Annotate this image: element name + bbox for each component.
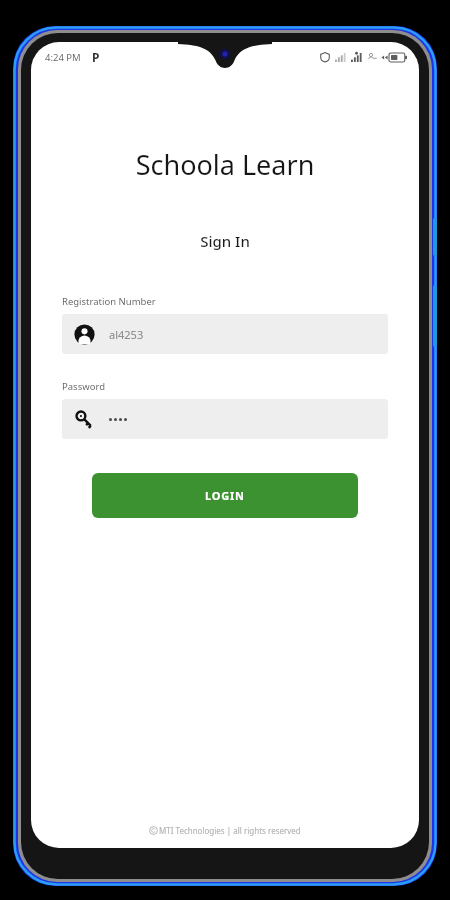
other: Password xyxy=(74,409,95,430)
staticText: 4:24 PM xyxy=(45,51,81,64)
button[interactable]: LOGIN xyxy=(92,473,358,518)
button[interactable]: Account xyxy=(62,314,388,354)
staticText: Schoola Learn xyxy=(31,146,419,183)
staticText: Registration Number xyxy=(62,295,156,308)
other: Account xyxy=(74,324,95,345)
staticText: al4253 xyxy=(109,327,144,342)
staticText: P xyxy=(92,49,100,65)
staticText: Password xyxy=(62,380,105,393)
staticText: MTI Technologies | all rights reserved xyxy=(159,825,301,836)
button[interactable]: Password xyxy=(62,399,388,439)
staticText: Sign In xyxy=(31,231,419,251)
staticText: LOGIN xyxy=(205,488,245,503)
